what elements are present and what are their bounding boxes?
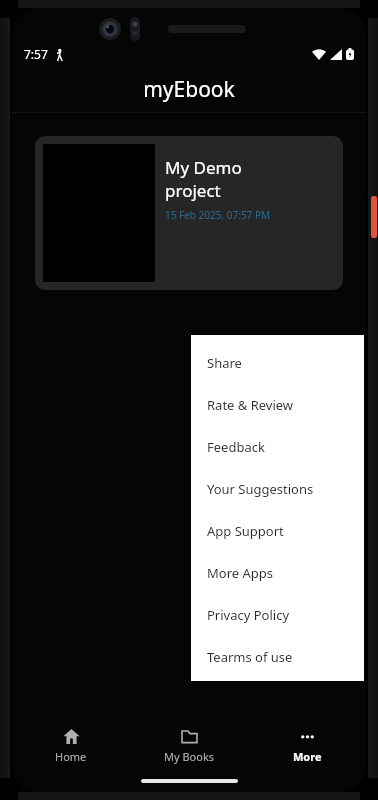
button[interactable]: Home — [12, 722, 130, 770]
staticText: My Books — [164, 749, 215, 764]
staticText: App Support — [207, 522, 284, 540]
button[interactable]: Feedback — [191, 426, 364, 468]
staticText: Rate & Review — [207, 396, 294, 414]
staticText: Your Suggestions — [207, 480, 314, 498]
staticText: My Demo project — [165, 156, 242, 202]
button[interactable]: My Demo project — [35, 136, 343, 290]
staticText: More — [293, 749, 322, 764]
staticText: Home — [55, 749, 87, 764]
button[interactable]: More — [248, 722, 366, 770]
staticText: Share — [207, 354, 242, 372]
staticText: myEbook — [143, 75, 235, 104]
staticText: Feedback — [207, 438, 265, 456]
button[interactable]: My Books — [130, 722, 248, 770]
staticText: More Apps — [207, 564, 274, 582]
button[interactable]: Tearms of use — [191, 636, 364, 678]
button[interactable]: More Apps — [191, 552, 364, 594]
button[interactable]: Rate & Review — [191, 384, 364, 426]
staticText: 15 Feb 2025, 07:57 PM — [165, 208, 271, 222]
button[interactable]: App Support — [191, 510, 364, 552]
staticText: 7:57 — [24, 46, 48, 62]
staticText: Privacy Policy — [207, 606, 290, 624]
staticText: Tearms of use — [207, 648, 293, 666]
button[interactable]: Privacy Policy — [191, 594, 364, 636]
button[interactable]: Your Suggestions — [191, 468, 364, 510]
button[interactable]: Share — [191, 342, 364, 384]
